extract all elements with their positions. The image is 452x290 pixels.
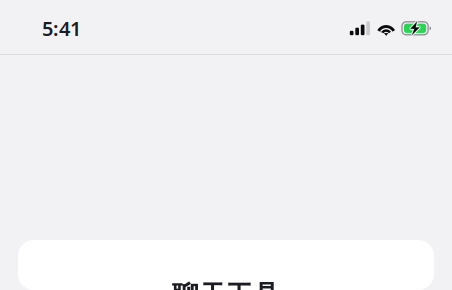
staticText: 聊天工具 [172, 279, 280, 290]
staticText: 5:41 [42, 15, 81, 42]
